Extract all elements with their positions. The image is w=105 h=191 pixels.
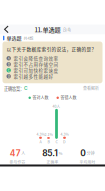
- staticText: D: [8, 74, 10, 79]
- staticText: 40人: [52, 104, 60, 109]
- staticText: B: [47, 139, 49, 144]
- staticText: 分钟: [87, 150, 95, 156]
- staticText: (3/4): [62, 26, 70, 33]
- staticText: 索引可加快检索速度: [13, 67, 58, 74]
- button[interactable]: 查看解析: [81, 84, 101, 92]
- staticText: 正确答案：: [4, 85, 24, 91]
- staticText: 人: [21, 150, 25, 156]
- staticText: 索引不占用存储空间: [13, 61, 58, 68]
- staticText: D: [63, 139, 66, 144]
- staticText: 共4题: [23, 35, 33, 41]
- staticText: C: [55, 139, 57, 144]
- staticText: 索引会降低查询效率: [13, 55, 58, 62]
- staticText: 答错人数: [60, 95, 76, 101]
- staticText: 85.1: [42, 148, 58, 158]
- staticText: C: [8, 68, 10, 73]
- staticText: 答对人数: [32, 95, 48, 101]
- staticText: 47: [10, 148, 21, 158]
- staticText: %: [59, 150, 63, 156]
- staticText: 参与作答: [9, 159, 25, 164]
- staticText: 平均用时: [79, 159, 95, 164]
- staticText: A: [39, 139, 41, 144]
- staticText: 查看解析: [83, 85, 99, 91]
- staticText: 单选题: [6, 34, 21, 42]
- staticText: C: [24, 85, 28, 91]
- staticText: 4.3%: [60, 131, 68, 137]
- staticText: B: [8, 62, 10, 67]
- staticText: 2.1%: [44, 132, 52, 137]
- staticText: 正确率: [46, 159, 58, 164]
- button[interactable]: Back: [0, 24, 13, 34]
- staticText: 4.3%: [36, 131, 44, 137]
- staticText: A: [8, 56, 10, 61]
- staticText: 索引越多性能越好: [13, 73, 53, 80]
- staticText: 以下关于数据库索引的说法，正确的是？: [6, 45, 96, 52]
- staticText: 11.单选题: [34, 25, 60, 34]
- staticText: 0: [80, 148, 86, 158]
